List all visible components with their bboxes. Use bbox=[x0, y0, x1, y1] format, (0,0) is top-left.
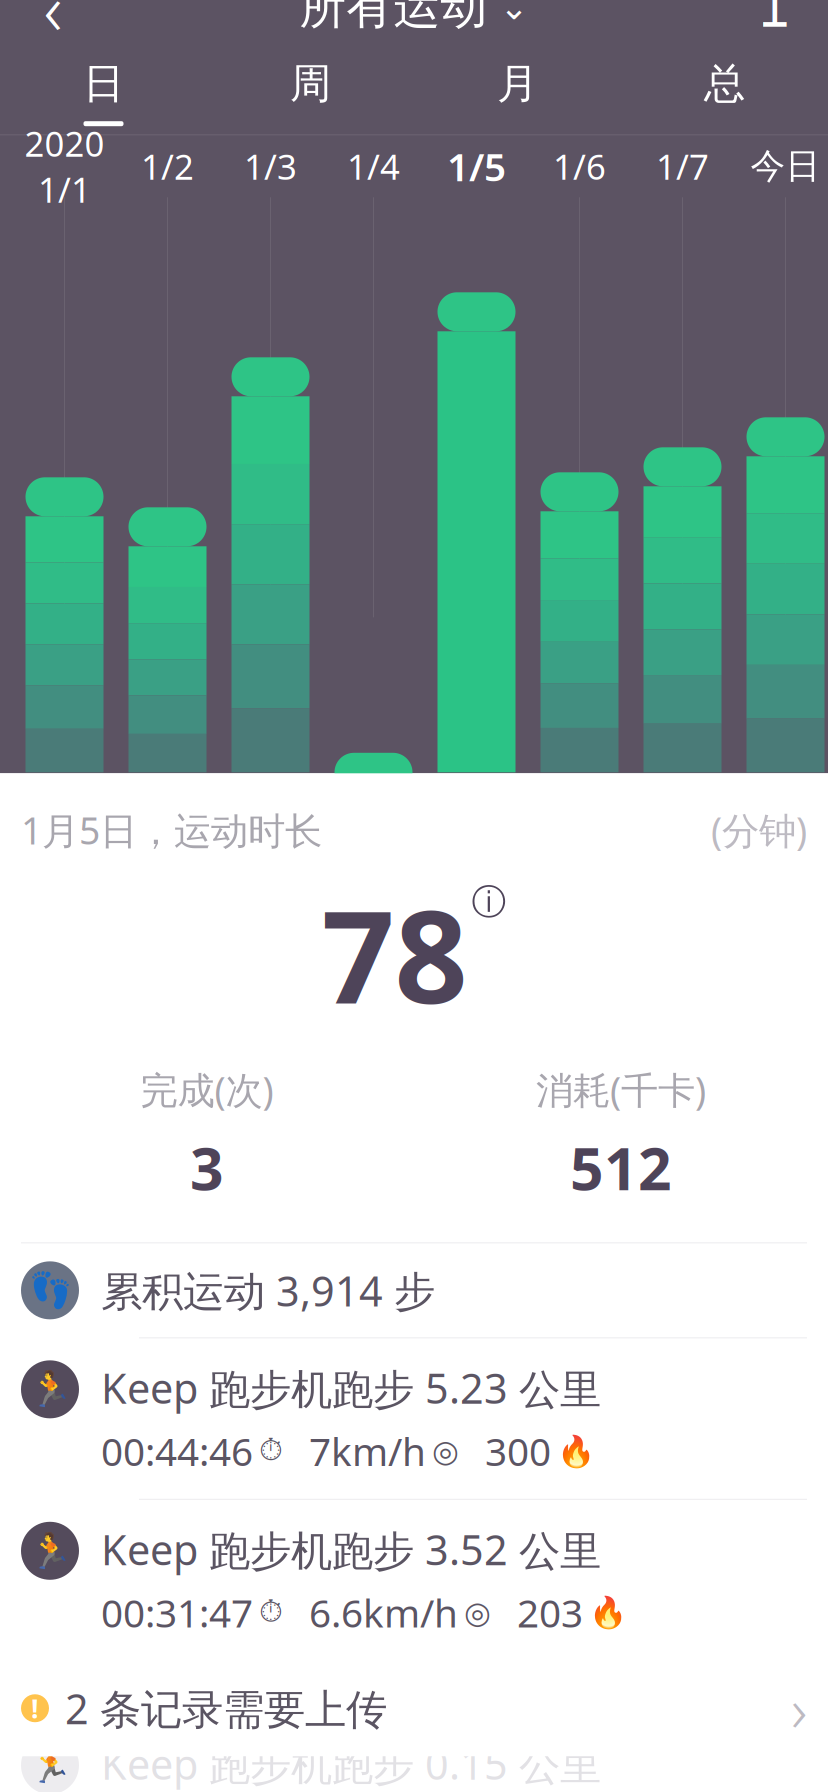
button[interactable]: Info bbox=[321, 855, 506, 1039]
staticText: 🏃 bbox=[28, 1531, 71, 1571]
button[interactable]: 月 bbox=[414, 49, 621, 135]
staticText: 1/5 bbox=[447, 141, 506, 192]
staticText: ‹ bbox=[43, 0, 62, 55]
staticText: 2 条记录需要上传 bbox=[65, 1681, 387, 1736]
staticText: 1/7 bbox=[656, 143, 709, 189]
button[interactable]: ! bbox=[0, 1660, 828, 1756]
staticText: 78 bbox=[321, 869, 467, 1039]
button[interactable]: 👣 bbox=[0, 1243, 828, 1337]
staticText: 周 bbox=[290, 58, 331, 109]
button[interactable]: 🏃 bbox=[0, 1714, 828, 1792]
button[interactable]: Back bbox=[13, 0, 93, 47]
staticText: › bbox=[791, 1667, 807, 1749]
staticText: 1/1 bbox=[38, 166, 91, 212]
staticText: 300 bbox=[485, 1425, 551, 1477]
staticText: ↥ bbox=[751, 0, 798, 39]
staticText: 🔥 bbox=[589, 1595, 627, 1630]
staticText: 累积运动 3,914 步 bbox=[101, 1263, 435, 1318]
staticText: Keep 跑步机跑步 3.52 公里 bbox=[101, 1522, 601, 1577]
staticText: 完成(次) bbox=[140, 1065, 273, 1114]
staticText: Keep 跑步机跑步 5.23 公里 bbox=[101, 1360, 601, 1415]
staticText: 1/2 bbox=[141, 143, 194, 189]
staticText: 🏃 bbox=[28, 1369, 71, 1409]
staticText: 00:31:47 bbox=[101, 1587, 253, 1638]
staticText: 1/3 bbox=[244, 143, 297, 189]
staticText: 512 bbox=[570, 1128, 672, 1206]
staticText: 日 bbox=[83, 58, 124, 109]
staticText: 1/4 bbox=[347, 143, 400, 189]
staticText: 总 bbox=[704, 58, 745, 109]
button[interactable]: 日 bbox=[0, 49, 207, 135]
staticText: ! bbox=[31, 1690, 39, 1726]
staticText: 🔥 bbox=[557, 1434, 595, 1469]
button[interactable]: 🏃 bbox=[0, 1500, 828, 1660]
staticText: 1月5日，运动时长 bbox=[21, 805, 322, 855]
button[interactable]: 周 bbox=[207, 49, 414, 135]
staticText: ⌄ bbox=[499, 0, 528, 27]
staticText: ⓘ bbox=[471, 881, 506, 923]
staticText: 👣 bbox=[28, 1270, 71, 1310]
staticText: 今日 bbox=[750, 145, 820, 188]
button[interactable]: 总 bbox=[621, 49, 828, 135]
staticText: ⏱ bbox=[259, 1598, 283, 1627]
button[interactable]: Share bbox=[735, 0, 815, 47]
staticText: 6.6km/h bbox=[309, 1587, 458, 1638]
staticText: 消耗(千卡) bbox=[536, 1065, 706, 1114]
staticText: (分钟) bbox=[711, 805, 807, 855]
staticText: 月 bbox=[497, 58, 538, 109]
staticText: 🏃 bbox=[28, 1745, 71, 1785]
staticText: 203 bbox=[517, 1587, 583, 1638]
staticText: 1/6 bbox=[553, 143, 606, 189]
staticText: 7km/h bbox=[309, 1425, 426, 1477]
button[interactable]: 所有运动 bbox=[285, 0, 542, 46]
staticText: ⏱ bbox=[259, 1436, 283, 1466]
staticText: 00:44:46 bbox=[101, 1425, 253, 1477]
staticText: Keep 跑步机跑步 0.15 公里 bbox=[101, 1736, 601, 1791]
button[interactable]: 🏃 bbox=[0, 1338, 828, 1499]
staticText: 3 bbox=[190, 1128, 224, 1206]
staticText: 所有运动 bbox=[299, 0, 487, 36]
staticText: ◎ bbox=[464, 1595, 491, 1630]
staticText: 2020 bbox=[24, 120, 104, 166]
staticText: ◎ bbox=[432, 1434, 459, 1468]
